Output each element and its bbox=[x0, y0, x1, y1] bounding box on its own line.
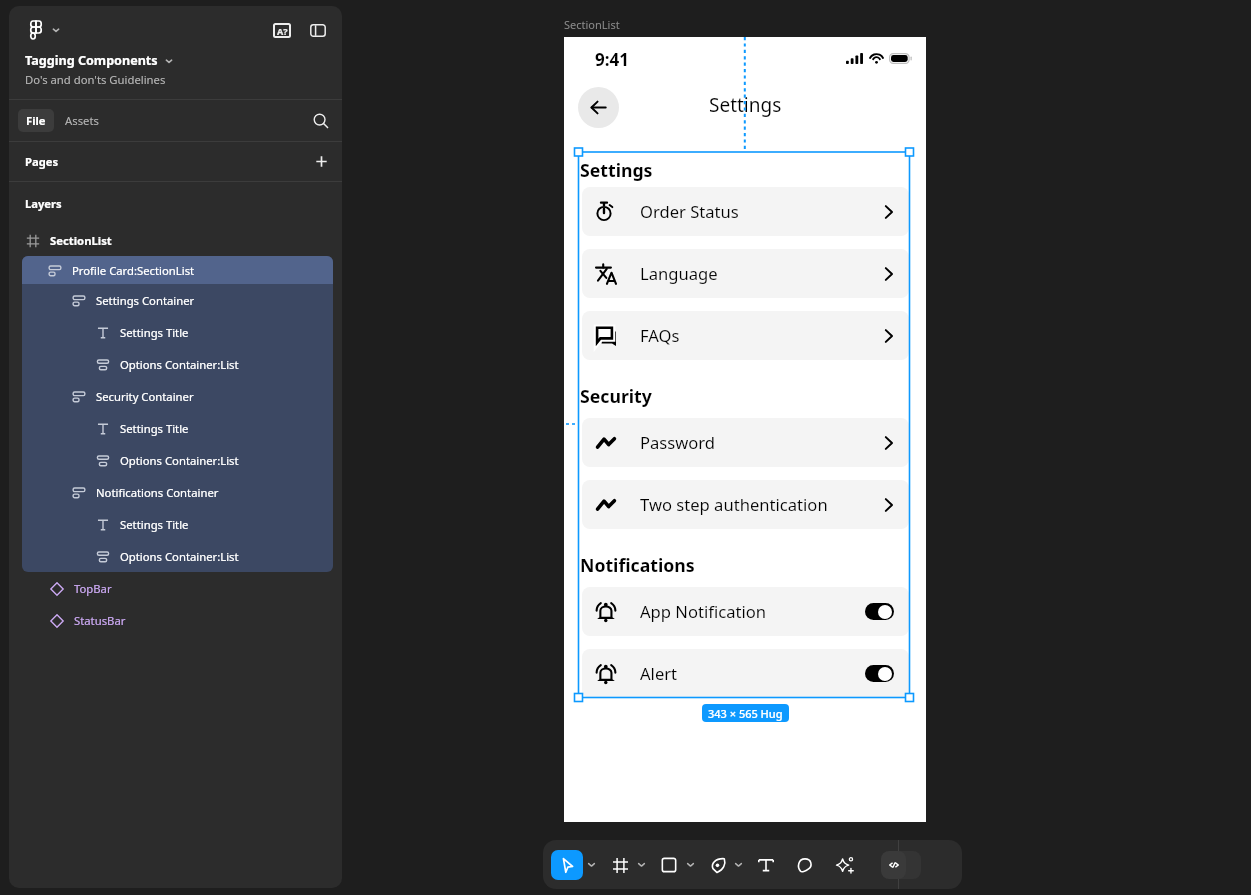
button[interactable]: Search bbox=[314, 114, 328, 128]
staticText: Settings Title bbox=[120, 421, 189, 436]
staticText: Pages bbox=[25, 154, 59, 169]
staticText: Layers bbox=[25, 196, 62, 211]
button[interactable]: Figma menu bbox=[24, 18, 48, 42]
staticText: Order Status bbox=[640, 200, 739, 223]
staticText: Options Container:List bbox=[120, 453, 239, 468]
button[interactable]: Toggle App Notification bbox=[865, 603, 894, 620]
staticText: Settings bbox=[709, 92, 782, 118]
button[interactable]: Settings Title bbox=[22, 316, 333, 348]
button[interactable]: Shape tool options bbox=[684, 858, 697, 871]
button[interactable]: Assets bbox=[54, 109, 110, 132]
button[interactable]: Frame tool options bbox=[635, 858, 648, 871]
button[interactable]: Notifications Container bbox=[22, 476, 333, 508]
button[interactable]: Pen tool bbox=[707, 854, 729, 876]
button[interactable]: Settings Container bbox=[22, 284, 333, 316]
button[interactable]: Language bbox=[582, 249, 909, 298]
staticText: Assets bbox=[65, 113, 99, 128]
staticText: Profile Card:SectionList bbox=[72, 263, 195, 278]
staticText: Settings Title bbox=[120, 517, 189, 532]
button[interactable]: FAQs bbox=[582, 311, 909, 360]
staticText: 9:41 bbox=[595, 48, 629, 68]
button[interactable]: Options Container:List bbox=[22, 348, 333, 380]
button[interactable]: Alert bbox=[582, 649, 909, 698]
staticText: App Notification bbox=[640, 600, 767, 623]
button[interactable]: Pen tool options bbox=[732, 858, 745, 871]
button[interactable]: Security Container bbox=[22, 380, 333, 412]
button[interactable]: Move tool bbox=[551, 850, 583, 880]
button[interactable]: Move tool options bbox=[585, 858, 598, 871]
button[interactable]: Options Container:List bbox=[22, 540, 333, 572]
staticText: Do's and don'ts Guidelines bbox=[25, 72, 166, 87]
staticText: Password bbox=[640, 431, 716, 454]
button[interactable]: Toggle right panel bbox=[310, 24, 326, 37]
staticText: Settings Title bbox=[120, 325, 189, 340]
staticText: Settings Container bbox=[96, 293, 195, 308]
button[interactable]: Text tool bbox=[755, 854, 777, 876]
button[interactable]: SectionList bbox=[9, 224, 342, 256]
button[interactable]: Two step authentication bbox=[582, 480, 909, 529]
button[interactable]: Password bbox=[582, 418, 909, 467]
button[interactable]: Settings Title bbox=[22, 508, 333, 540]
staticText: A? bbox=[277, 25, 288, 37]
button[interactable]: Profile Card:SectionList bbox=[22, 256, 333, 284]
button[interactable]: Settings Title bbox=[22, 412, 333, 444]
staticText: Options Container:List bbox=[120, 357, 239, 372]
button[interactable]: TopBar bbox=[9, 572, 342, 604]
staticText: Settings bbox=[580, 158, 653, 182]
button[interactable]: File bbox=[18, 109, 54, 132]
staticText: Notifications bbox=[580, 553, 695, 577]
staticText: Language bbox=[640, 262, 718, 285]
button[interactable]: Toggle Alert bbox=[865, 665, 894, 682]
button[interactable]: Dev mode bbox=[881, 851, 921, 879]
staticText: Alert bbox=[640, 662, 678, 685]
staticText: File bbox=[26, 113, 46, 128]
button[interactable]: Back bbox=[578, 87, 619, 128]
button[interactable]: Actions bbox=[833, 854, 855, 876]
button[interactable]: Shape tool bbox=[658, 854, 680, 876]
staticText: Tagging Components bbox=[25, 52, 158, 69]
button[interactable]: Comment bbox=[794, 854, 816, 876]
staticText: SectionList bbox=[50, 233, 112, 248]
staticText: SectionList bbox=[564, 17, 620, 32]
button[interactable]: Frame tool bbox=[609, 854, 631, 876]
button[interactable]: Order Status bbox=[582, 187, 909, 236]
staticText: StatusBar bbox=[74, 613, 126, 628]
button[interactable]: StatusBar bbox=[9, 604, 342, 636]
staticText: Security bbox=[580, 384, 652, 408]
staticText: Notifications Container bbox=[96, 485, 219, 500]
button[interactable]: App Notification bbox=[582, 587, 909, 636]
staticText: FAQs bbox=[640, 324, 680, 347]
staticText: Options Container:List bbox=[120, 549, 239, 564]
staticText: 343 × 565 Hug bbox=[708, 706, 783, 721]
button[interactable]: Add page bbox=[315, 155, 328, 168]
button[interactable]: Accessibility check bbox=[273, 23, 291, 38]
staticText: TopBar bbox=[74, 581, 112, 596]
staticText: Security Container bbox=[96, 389, 194, 404]
button[interactable]: Options Container:List bbox=[22, 444, 333, 476]
staticText: Two step authentication bbox=[640, 493, 828, 516]
